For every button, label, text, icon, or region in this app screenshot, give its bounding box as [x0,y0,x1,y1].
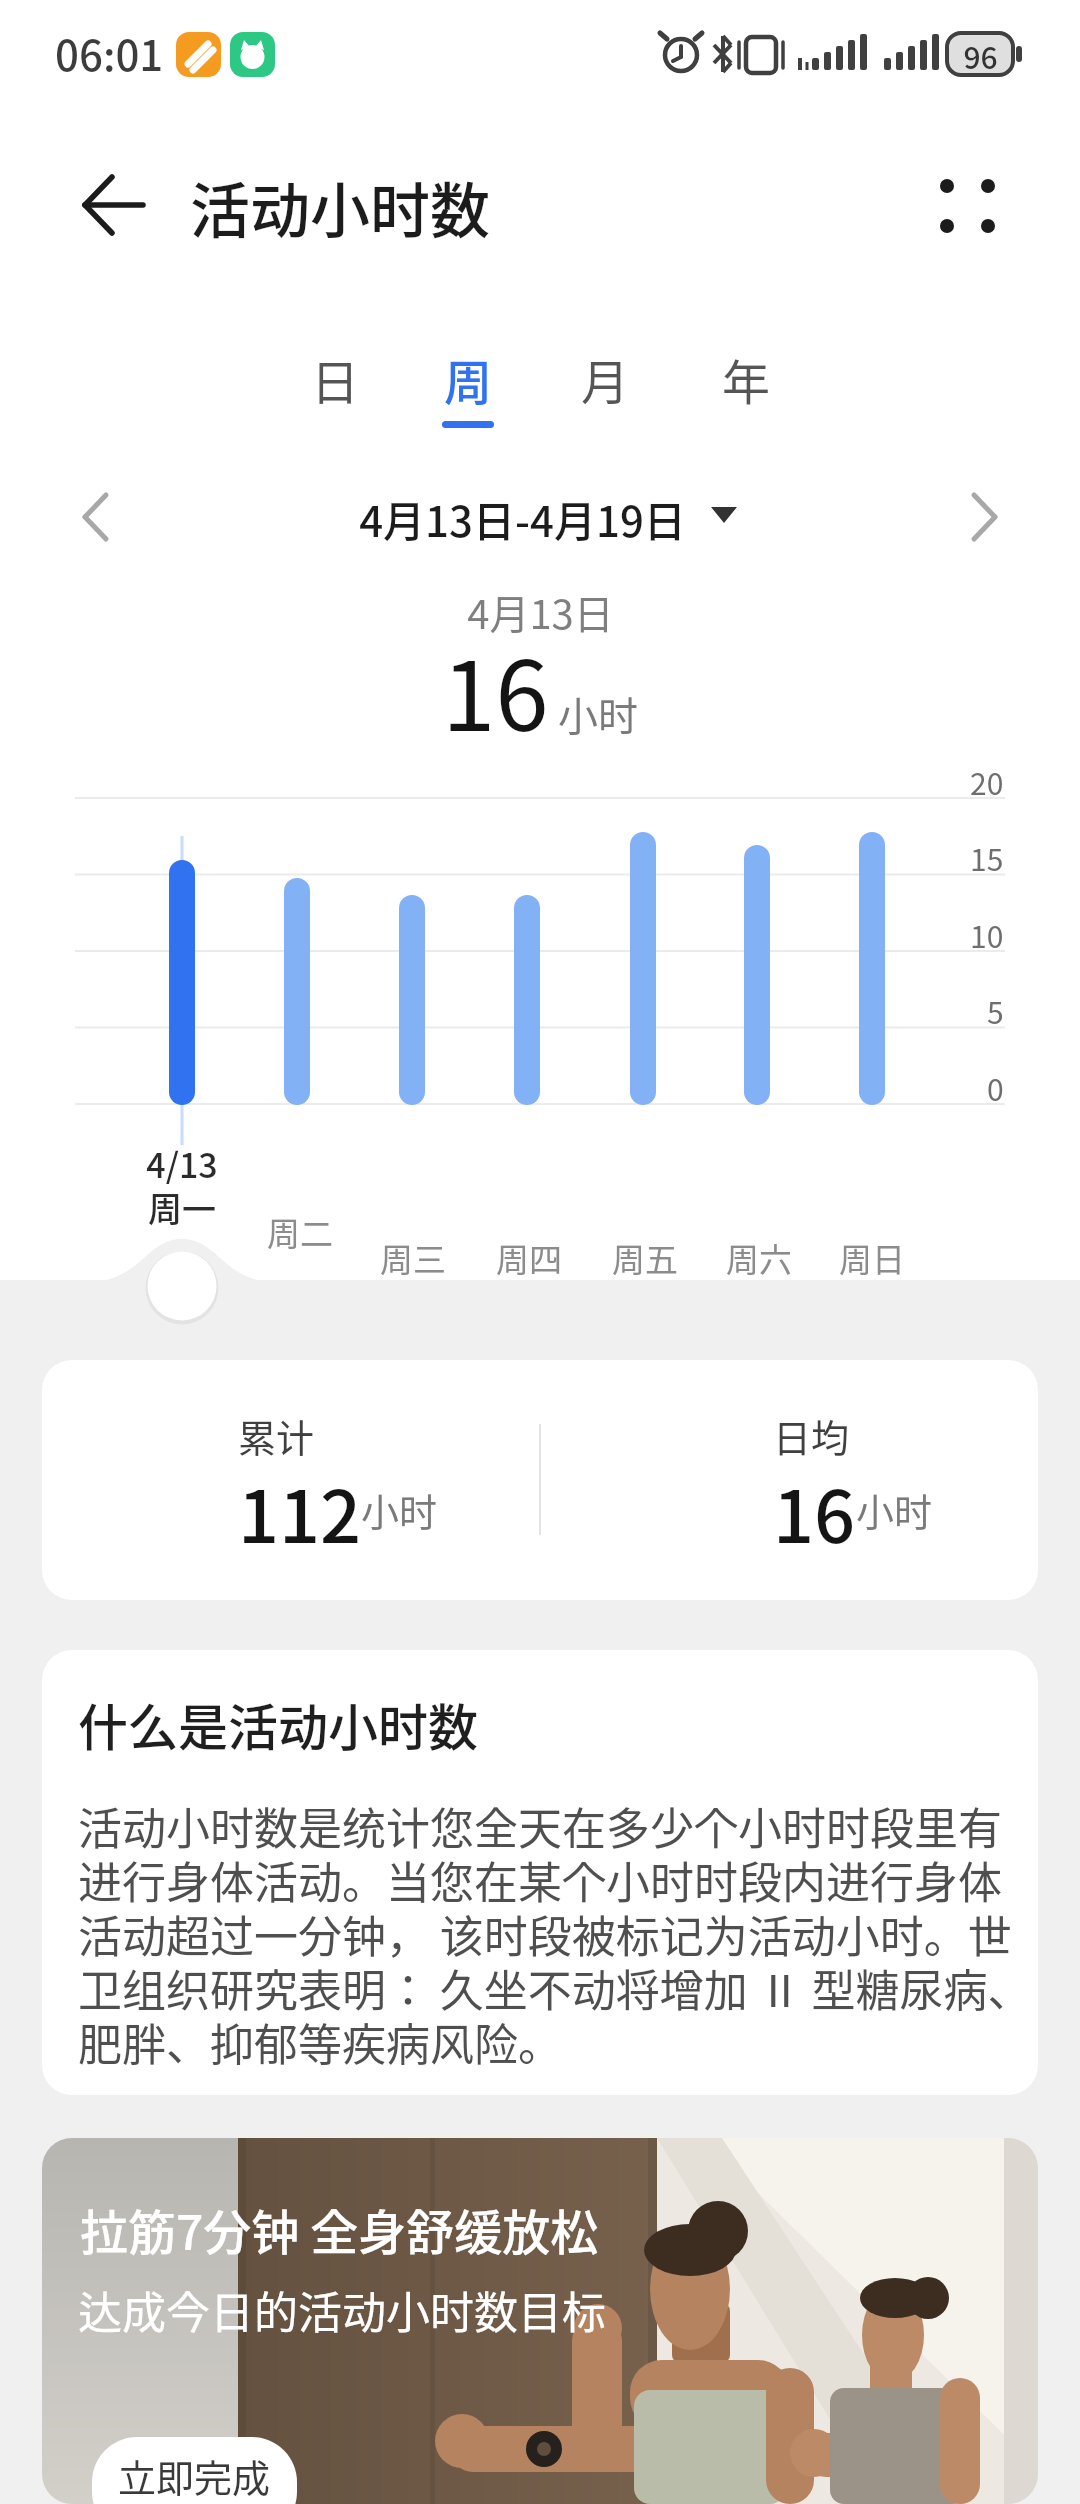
staticText: 小时 [856,1482,933,1537]
staticText: 10 [970,913,1004,956]
staticText: 卫组织研究表明： 久坐不动将增加 Ⅱ 型糖尿病、 [78,1956,1032,2020]
staticText: 4月13日-4月19日 [359,488,686,549]
staticText: 5 [987,989,1004,1032]
staticText: 进行身体活动。当您在某个小时时段内进行身体 [78,1848,1002,1912]
button[interactable]: 周 [402,344,534,436]
staticText: 月 [581,344,630,414]
staticText: 周四 [496,1234,562,1282]
staticText: 什么是活动小时数 [78,1688,478,1760]
staticText: 活动超过一分钟， 该时段被标记为活动小时。世 [78,1902,1012,1966]
button[interactable] [920,160,1015,255]
staticText: 15 [970,836,1004,879]
button[interactable] [42,1360,1038,1600]
staticText: 周一 [148,1183,216,1232]
staticText: 拉筋7分钟 全身舒缓放松 [80,2194,599,2264]
button[interactable] [320,480,760,550]
staticText: 周六 [726,1234,792,1282]
button[interactable] [60,160,150,250]
staticText: 年 [722,344,771,414]
staticText: 立即完成 [118,2448,271,2503]
staticText: 0 [987,1066,1004,1109]
staticText: 达成今日的活动小时数目标 [78,2278,606,2342]
staticText: 16 [442,620,549,759]
staticText: 累计 [238,1408,315,1463]
staticText: 周五 [612,1234,678,1282]
staticText: 日均 [773,1408,850,1463]
staticText: 周日 [839,1234,905,1282]
staticText: 日 [311,344,360,414]
staticText: 小时 [361,1482,438,1537]
staticText: 周三 [380,1234,446,1282]
staticText: 小时 [549,685,638,743]
button[interactable] [944,477,1024,557]
staticText: 肥胖、抑郁等疾病风险。 [78,2010,562,2074]
staticText: 周 [444,344,493,414]
staticText: 周二 [267,1208,333,1256]
button[interactable]: 日 [269,344,401,436]
button[interactable]: 立即完成 [92,2437,297,2504]
staticText: 06:01 [55,22,164,83]
staticText: 活动小时数是统计您全天在多少个小时时段里有 [78,1794,1002,1858]
button[interactable] [56,477,136,557]
staticText: 20 [970,760,1004,803]
staticText: 活动小时数 [190,163,490,250]
button[interactable]: 拉筋7分钟 全身舒缓放松 [42,2138,1038,2504]
staticText: 4/13 [146,1139,218,1188]
button[interactable] [42,1650,1038,2095]
staticText: 16 [773,1459,856,1563]
button[interactable]: 年 [680,344,812,436]
staticText: 112 [238,1459,362,1563]
staticText: 96 [963,34,998,77]
button[interactable]: 月 [539,344,671,436]
staticText: 4月13日 [467,583,614,641]
